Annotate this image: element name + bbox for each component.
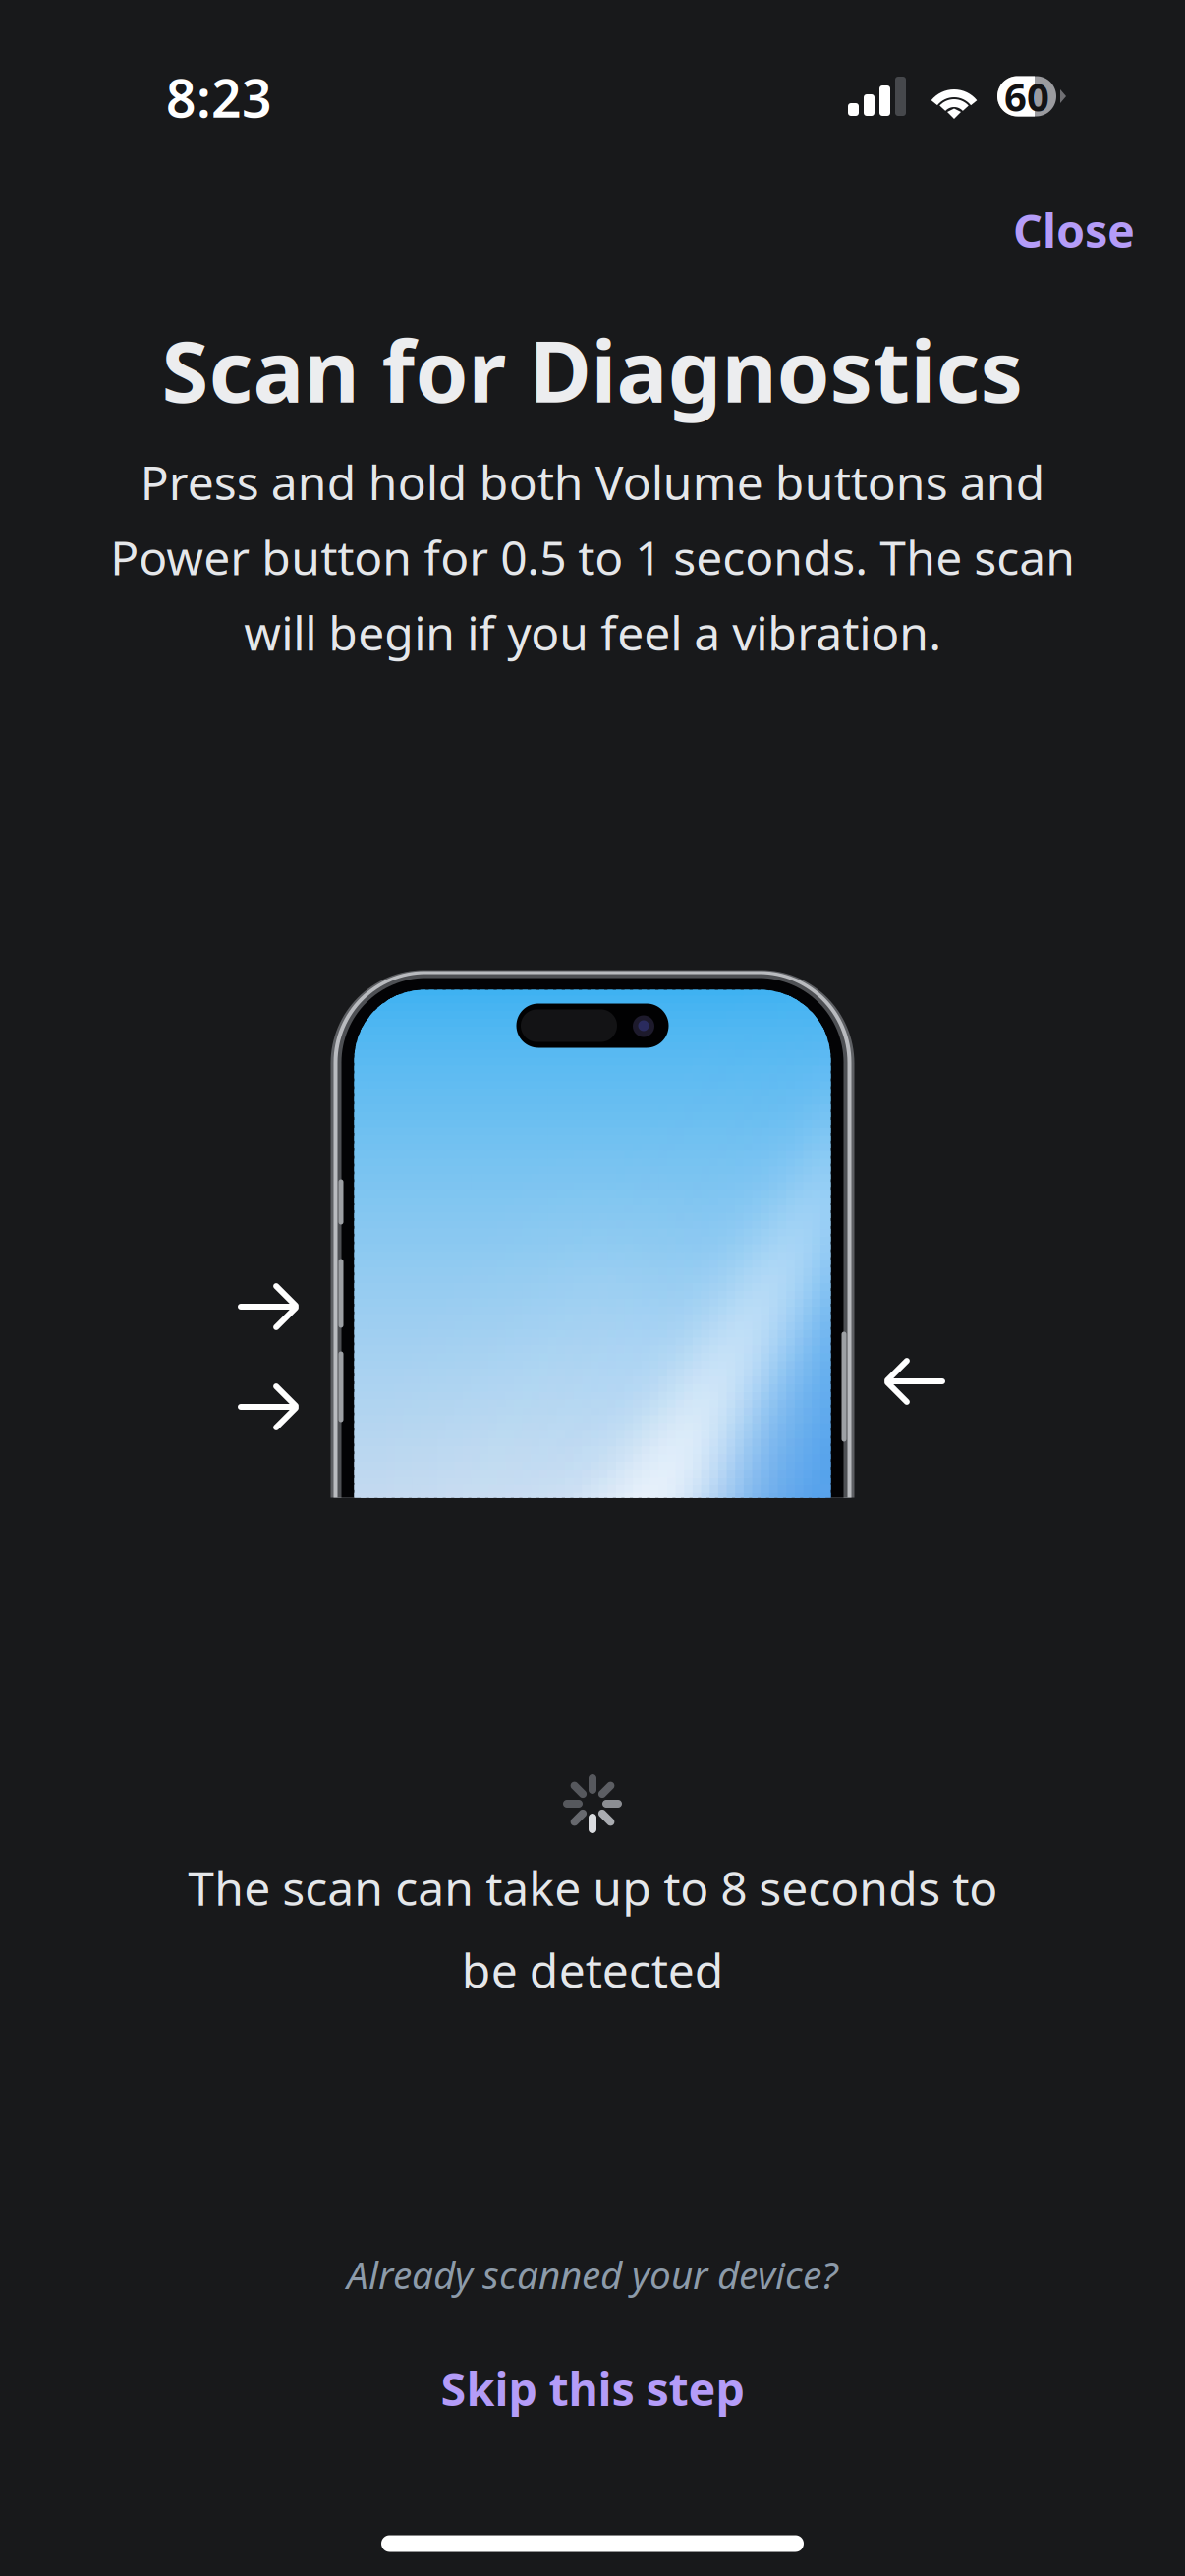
button[interactable]: Skip this step bbox=[367, 2334, 818, 2442]
staticText: Press and hold both Volume buttons and P… bbox=[110, 450, 1075, 664]
staticText: Scan for Diagnostics bbox=[162, 313, 1023, 426]
button[interactable]: Close bbox=[968, 185, 1135, 275]
staticText: The scan can take up to 8 seconds to be … bbox=[188, 1856, 997, 2001]
staticText: Skip this step bbox=[441, 2358, 744, 2419]
staticText: Close bbox=[1013, 199, 1135, 260]
staticText: 8:23 bbox=[166, 62, 272, 132]
staticText: Already scanned your device? bbox=[347, 2249, 838, 2300]
staticText: 60 bbox=[1004, 70, 1049, 122]
